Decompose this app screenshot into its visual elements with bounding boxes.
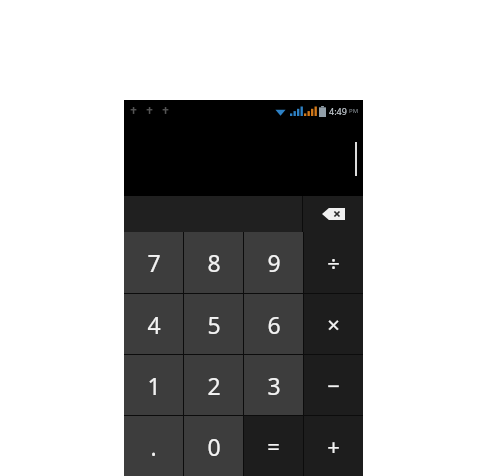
staticText: 6 [267,309,281,340]
button[interactable]: . [124,416,183,476]
staticText: 4:49 [329,105,347,117]
button[interactable]: 5 [184,294,243,354]
button[interactable]: 0 [184,416,243,476]
staticText: − [327,370,340,400]
button[interactable]: 9 [244,232,303,293]
staticText: 3 [267,370,281,401]
button[interactable]: 8 [184,232,243,293]
staticText: 2 [207,370,221,401]
button[interactable]: = [244,416,303,476]
button[interactable]: 7 [124,232,183,293]
staticText: 0 [207,431,221,462]
staticText: 7 [147,247,161,278]
button[interactable]: − [304,355,363,415]
button[interactable]: ÷ [304,232,363,293]
button[interactable]: 4 [124,294,183,354]
staticText: ÷ [327,248,340,278]
staticText: 1 [147,370,161,401]
staticText: 5 [207,309,221,340]
staticText: 8 [207,247,221,278]
button[interactable]: × [304,294,363,354]
button[interactable]: 2 [184,355,243,415]
button[interactable]: + [304,416,363,476]
staticText: 9 [267,247,281,278]
staticText: PM [349,107,359,115]
button[interactable]: 1 [124,355,183,415]
button[interactable]: 6 [244,294,303,354]
staticText: + [327,431,340,461]
staticText: . [150,431,157,462]
staticText: × [327,309,340,339]
staticText: = [267,431,280,461]
button[interactable]: Delete [303,196,363,232]
staticText: 4 [147,309,161,340]
button[interactable]: 3 [244,355,303,415]
